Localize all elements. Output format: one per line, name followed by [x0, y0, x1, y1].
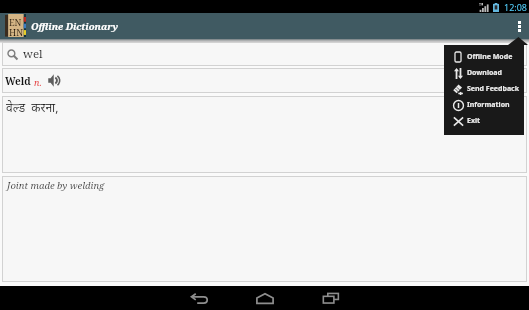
- staticText: EN: [9, 16, 22, 28]
- staticText: वेल्ड करना,: [6, 99, 59, 115]
- button[interactable]: Exit: [444, 113, 524, 129]
- button[interactable]: Information: [444, 97, 524, 113]
- staticText: 12:08: [504, 1, 528, 13]
- button[interactable]: Back: [166, 286, 232, 310]
- staticText: n.: [34, 76, 42, 88]
- button[interactable]: Send Feedback: [444, 81, 524, 97]
- staticText: wel: [23, 46, 43, 62]
- staticText: Send Feedback: [467, 84, 520, 94]
- staticText: Download: [467, 68, 502, 78]
- staticText: Joint made by welding: [7, 179, 105, 192]
- staticText: HN: [9, 26, 24, 38]
- button[interactable]: More options: [509, 13, 529, 39]
- button[interactable]: Home: [232, 286, 298, 310]
- staticText: Information: [467, 100, 510, 110]
- staticText: Weld: [5, 74, 31, 88]
- button[interactable]: wel: [2, 42, 527, 66]
- button[interactable]: Offline Mode: [444, 49, 524, 65]
- staticText: Exit: [467, 116, 481, 126]
- staticText: Offline Dictionary: [31, 20, 119, 33]
- staticText: Offline Mode: [467, 52, 513, 62]
- button[interactable]: Recents: [298, 286, 364, 310]
- button[interactable]: Download: [444, 65, 524, 81]
- button[interactable]: Pronounce: [47, 68, 62, 93]
